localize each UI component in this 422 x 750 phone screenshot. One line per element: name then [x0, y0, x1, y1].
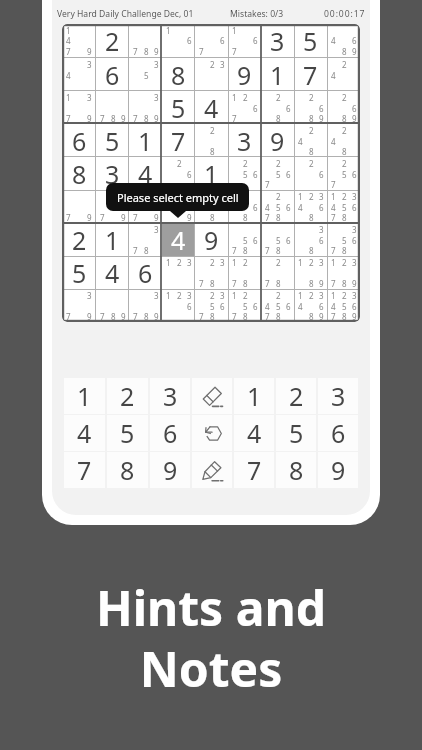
- button[interactable]: 2: [195, 58, 228, 91]
- button[interactable]: 1: [62, 91, 96, 124]
- button[interactable]: 7: [96, 91, 129, 124]
- button[interactable]: 7: [129, 190, 162, 223]
- button[interactable]: 2: [261, 256, 294, 289]
- button[interactable]: 1: [64, 378, 105, 414]
- button[interactable]: 8: [162, 58, 195, 91]
- button[interactable]: 1: [294, 256, 327, 289]
- button[interactable]: 7: [62, 190, 96, 223]
- button[interactable]: 6: [129, 256, 162, 289]
- button[interactable]: 1: [162, 256, 195, 289]
- button[interactable]: 3: [62, 289, 96, 322]
- button[interactable]: 4: [162, 223, 195, 256]
- button[interactable]: 2: [294, 91, 327, 124]
- button[interactable]: 3: [327, 223, 360, 256]
- button[interactable]: 8: [195, 190, 228, 223]
- button[interactable]: 4: [129, 157, 162, 190]
- button[interactable]: 5: [96, 124, 129, 157]
- button[interactable]: 3: [294, 223, 327, 256]
- button[interactable]: 6: [318, 415, 358, 451]
- button[interactable]: 1: [234, 378, 274, 414]
- button[interactable]: 3: [129, 58, 162, 91]
- button[interactable]: 9: [228, 58, 261, 91]
- button[interactable]: 7: [96, 289, 129, 322]
- button[interactable]: 1: [228, 289, 261, 322]
- button[interactable]: 5: [107, 415, 148, 451]
- button[interactable]: Undo: [192, 415, 232, 451]
- button[interactable]: 4: [327, 24, 360, 58]
- button[interactable]: 3: [129, 223, 162, 256]
- button[interactable]: 4: [234, 415, 274, 451]
- button[interactable]: 7: [294, 58, 327, 91]
- button[interactable]: 6: [96, 58, 129, 91]
- button[interactable]: 5: [261, 223, 294, 256]
- button[interactable]: 1: [162, 289, 195, 322]
- button[interactable]: 5: [228, 223, 261, 256]
- button[interactable]: 3: [129, 289, 162, 322]
- button[interactable]: 2: [327, 58, 360, 91]
- button[interactable]: 3: [96, 157, 129, 190]
- button[interactable]: 7: [129, 24, 162, 58]
- button[interactable]: 6: [228, 190, 261, 223]
- button[interactable]: 2: [195, 289, 228, 322]
- button[interactable]: 4: [96, 256, 129, 289]
- button[interactable]: 1: [96, 223, 129, 256]
- button[interactable]: 1: [162, 24, 195, 58]
- button[interactable]: 9: [318, 452, 358, 488]
- button[interactable]: 2: [294, 157, 327, 190]
- button[interactable]: 2: [62, 223, 96, 256]
- button[interactable]: 1: [195, 157, 228, 190]
- button[interactable]: 9: [150, 452, 190, 488]
- button[interactable]: 1: [228, 24, 261, 58]
- button[interactable]: 2: [327, 157, 360, 190]
- button[interactable]: 6: [62, 124, 96, 157]
- button[interactable]: 1: [327, 289, 360, 322]
- button[interactable]: 2: [294, 124, 327, 157]
- button[interactable]: 5: [276, 415, 316, 451]
- button[interactable]: 2: [107, 378, 148, 414]
- button[interactable]: 7: [162, 124, 195, 157]
- button[interactable]: 1: [261, 58, 294, 91]
- button[interactable]: 9: [195, 223, 228, 256]
- button[interactable]: 8: [107, 452, 148, 488]
- button[interactable]: 3: [228, 124, 261, 157]
- button[interactable]: 2: [276, 378, 316, 414]
- button[interactable]: 9: [162, 190, 195, 223]
- button[interactable]: 3: [129, 91, 162, 124]
- button[interactable]: 2: [162, 157, 195, 190]
- button[interactable]: 1: [129, 124, 162, 157]
- button[interactable]: 3: [62, 58, 96, 91]
- button[interactable]: 4: [195, 91, 228, 124]
- button[interactable]: Pencil notes: [192, 452, 232, 488]
- button[interactable]: 2: [261, 91, 294, 124]
- button[interactable]: 2: [96, 24, 129, 58]
- button[interactable]: 2: [195, 124, 228, 157]
- button[interactable]: 2: [228, 157, 261, 190]
- button[interactable]: 3: [150, 378, 190, 414]
- button[interactable]: 3: [318, 378, 358, 414]
- button[interactable]: 1: [228, 256, 261, 289]
- button[interactable]: 5: [62, 256, 96, 289]
- button[interactable]: 7: [96, 190, 129, 223]
- button[interactable]: 5: [162, 91, 195, 124]
- button[interactable]: 1: [228, 91, 261, 124]
- button[interactable]: 1: [327, 190, 360, 223]
- button[interactable]: 1: [327, 256, 360, 289]
- button[interactable]: 5: [294, 24, 327, 58]
- button[interactable]: 8: [62, 157, 96, 190]
- button[interactable]: 3: [261, 24, 294, 58]
- button[interactable]: 2: [327, 91, 360, 124]
- button[interactable]: 2: [261, 289, 294, 322]
- button[interactable]: 2: [195, 256, 228, 289]
- button[interactable]: 7: [64, 452, 105, 488]
- button[interactable]: 6: [150, 415, 190, 451]
- button[interactable]: 1: [62, 24, 96, 58]
- button[interactable]: 2: [261, 157, 294, 190]
- button[interactable]: 2: [261, 190, 294, 223]
- button[interactable]: 7: [234, 452, 274, 488]
- button[interactable]: 2: [327, 124, 360, 157]
- button[interactable]: 1: [294, 190, 327, 223]
- button[interactable]: 8: [276, 452, 316, 488]
- button[interactable]: 1: [294, 289, 327, 322]
- button[interactable]: 9: [261, 124, 294, 157]
- button[interactable]: Erase: [192, 378, 232, 414]
